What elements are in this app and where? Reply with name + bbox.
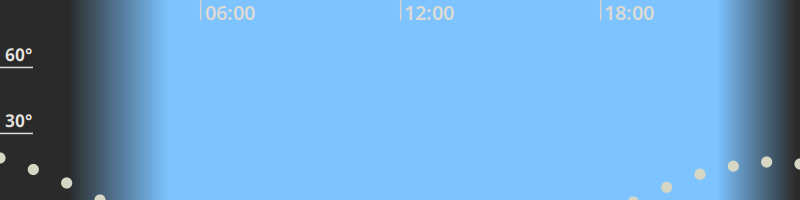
staticText: 30° — [5, 109, 32, 132]
staticText: 12:00 — [404, 0, 454, 26]
staticText: 06:00 — [205, 0, 255, 26]
staticText: 18:00 — [604, 0, 654, 26]
staticText: 60° — [5, 43, 32, 66]
